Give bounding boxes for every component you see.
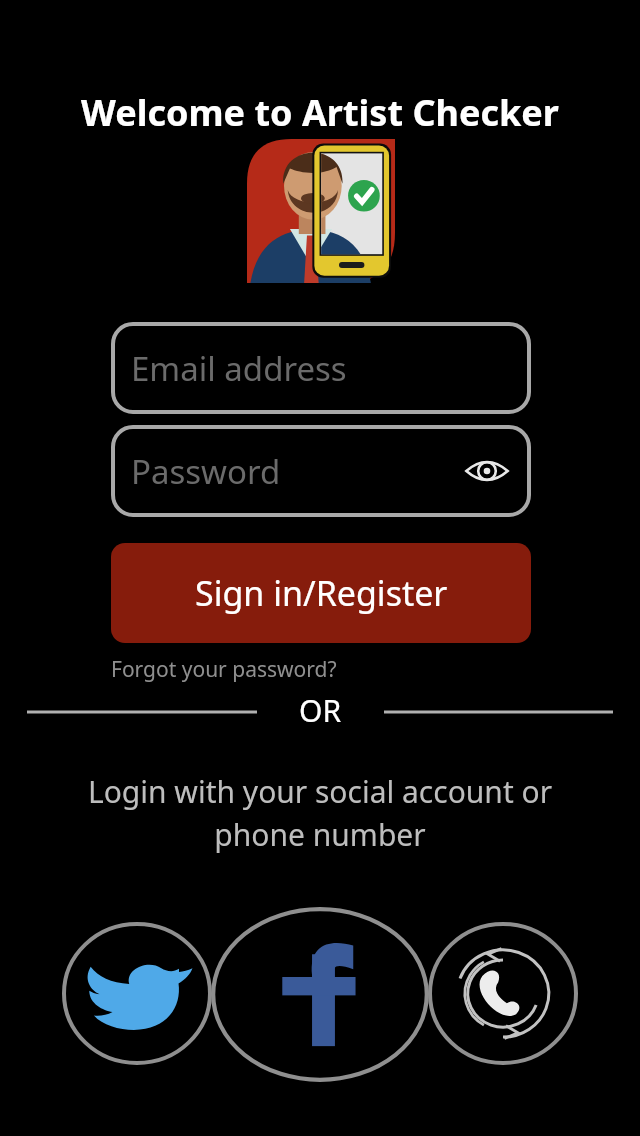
staticText: Login with your social account or phone … xyxy=(0,771,640,855)
button[interactable]: Show password xyxy=(465,456,509,486)
button[interactable]: Sign in/Register xyxy=(111,543,531,643)
staticText: Sign in/Register xyxy=(195,570,448,616)
staticText: Welcome to Artist Checker xyxy=(0,88,640,137)
button[interactable]: Sign in with Twitter xyxy=(62,922,212,1065)
button[interactable]: Sign in with phone number xyxy=(428,922,578,1065)
button[interactable]: Forgot your password? xyxy=(111,655,337,684)
button[interactable]: Sign in with Facebook xyxy=(211,907,429,1082)
button[interactable]: Email address xyxy=(111,322,531,414)
button[interactable]: Password xyxy=(111,425,531,517)
staticText: Email address xyxy=(131,346,347,391)
staticText: Forgot your password? xyxy=(111,655,337,684)
staticText: Password xyxy=(131,449,281,494)
staticText: OR xyxy=(0,690,640,731)
